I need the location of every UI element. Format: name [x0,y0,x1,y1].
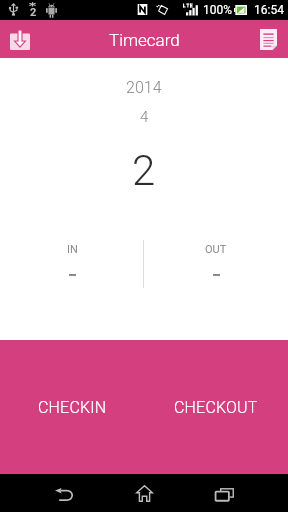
button[interactable]: CHECKOUT [144,340,288,474]
staticText: CHECKOUT [174,398,258,417]
staticText: 4 [140,108,149,126]
button[interactable]: Recent apps [200,474,248,512]
staticText: 2 [30,6,37,19]
button[interactable]: Home [120,474,168,512]
staticText: Timecard [109,30,180,50]
button[interactable]: History list [254,24,283,55]
button[interactable]: Back [40,474,88,512]
staticText: IN [67,243,78,256]
staticText: CHECKIN [38,398,107,417]
button[interactable]: Timecard app [5,24,34,55]
staticText: 16:54 [254,3,284,17]
staticText: 100% [203,3,233,17]
staticText: 2 [132,146,156,195]
staticText: OUT [205,243,227,256]
staticText: 2014 [126,78,162,97]
button[interactable]: CHECKIN [0,340,144,474]
